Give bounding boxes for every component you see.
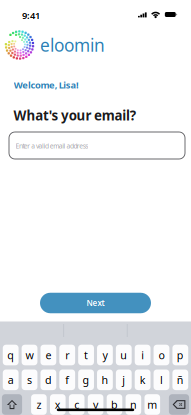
staticText: w bbox=[25, 348, 33, 362]
button[interactable]: Shift bbox=[2, 394, 22, 415]
button[interactable]: p bbox=[172, 345, 188, 365]
button[interactable]: x bbox=[50, 394, 66, 415]
button[interactable]: k bbox=[135, 369, 150, 390]
button[interactable]: i bbox=[135, 345, 150, 365]
staticText: i bbox=[141, 348, 144, 362]
staticText: 9:41 bbox=[22, 9, 40, 22]
staticText: k bbox=[140, 373, 146, 387]
staticText: e bbox=[45, 348, 51, 362]
button[interactable]: e bbox=[40, 345, 56, 365]
staticText: f bbox=[65, 373, 69, 387]
staticText: t bbox=[84, 348, 88, 362]
staticText: d bbox=[45, 373, 52, 387]
button[interactable]: Next bbox=[40, 293, 151, 313]
button[interactable]: r bbox=[59, 345, 75, 365]
staticText: h bbox=[101, 373, 108, 387]
staticText: ñ bbox=[177, 373, 184, 387]
staticText: What's your email? bbox=[14, 106, 136, 124]
button[interactable]: a bbox=[3, 369, 19, 390]
button[interactable]: o bbox=[154, 345, 169, 365]
staticText: y bbox=[102, 348, 107, 362]
button[interactable]: w bbox=[22, 345, 37, 365]
button[interactable]: y bbox=[97, 345, 113, 365]
staticText: m bbox=[147, 397, 157, 412]
button[interactable]: u bbox=[116, 345, 132, 365]
button[interactable]: ñ bbox=[172, 369, 188, 390]
staticText: s bbox=[27, 373, 32, 387]
staticText: Welcome, Lisa! bbox=[14, 79, 79, 91]
button[interactable]: q bbox=[3, 345, 19, 365]
staticText: eloomin bbox=[40, 33, 105, 56]
staticText: q bbox=[7, 348, 14, 362]
button[interactable]: g bbox=[78, 369, 94, 390]
staticText: Enter a valid email address bbox=[15, 142, 88, 150]
button[interactable]: b bbox=[107, 394, 122, 415]
staticText: j bbox=[122, 373, 125, 387]
button[interactable]: n bbox=[126, 394, 141, 415]
button[interactable]: t bbox=[78, 345, 94, 365]
staticText: g bbox=[83, 373, 90, 387]
button[interactable]: s bbox=[22, 369, 37, 390]
button[interactable]: v bbox=[88, 394, 103, 415]
button[interactable]: f bbox=[59, 369, 75, 390]
staticText: c bbox=[74, 397, 79, 412]
staticText: x bbox=[55, 397, 61, 412]
staticText: v bbox=[93, 397, 98, 412]
staticText: Next bbox=[86, 298, 104, 308]
button[interactable]: d bbox=[40, 369, 56, 390]
staticText: r bbox=[65, 348, 69, 362]
staticText: b bbox=[111, 397, 118, 412]
button[interactable]: Enter a valid email address bbox=[9, 132, 185, 159]
button[interactable]: z bbox=[31, 394, 47, 415]
staticText: z bbox=[36, 397, 41, 412]
staticText: u bbox=[120, 348, 127, 362]
staticText: a bbox=[8, 373, 14, 387]
staticText: n bbox=[130, 397, 137, 412]
staticText: p bbox=[177, 348, 184, 362]
button[interactable]: l bbox=[154, 369, 169, 390]
button[interactable]: h bbox=[97, 369, 113, 390]
button[interactable]: Delete bbox=[169, 394, 189, 415]
staticText: o bbox=[158, 348, 164, 362]
button[interactable]: c bbox=[69, 394, 84, 415]
staticText: l bbox=[160, 373, 163, 387]
button[interactable]: j bbox=[116, 369, 132, 390]
button[interactable]: m bbox=[144, 394, 160, 415]
